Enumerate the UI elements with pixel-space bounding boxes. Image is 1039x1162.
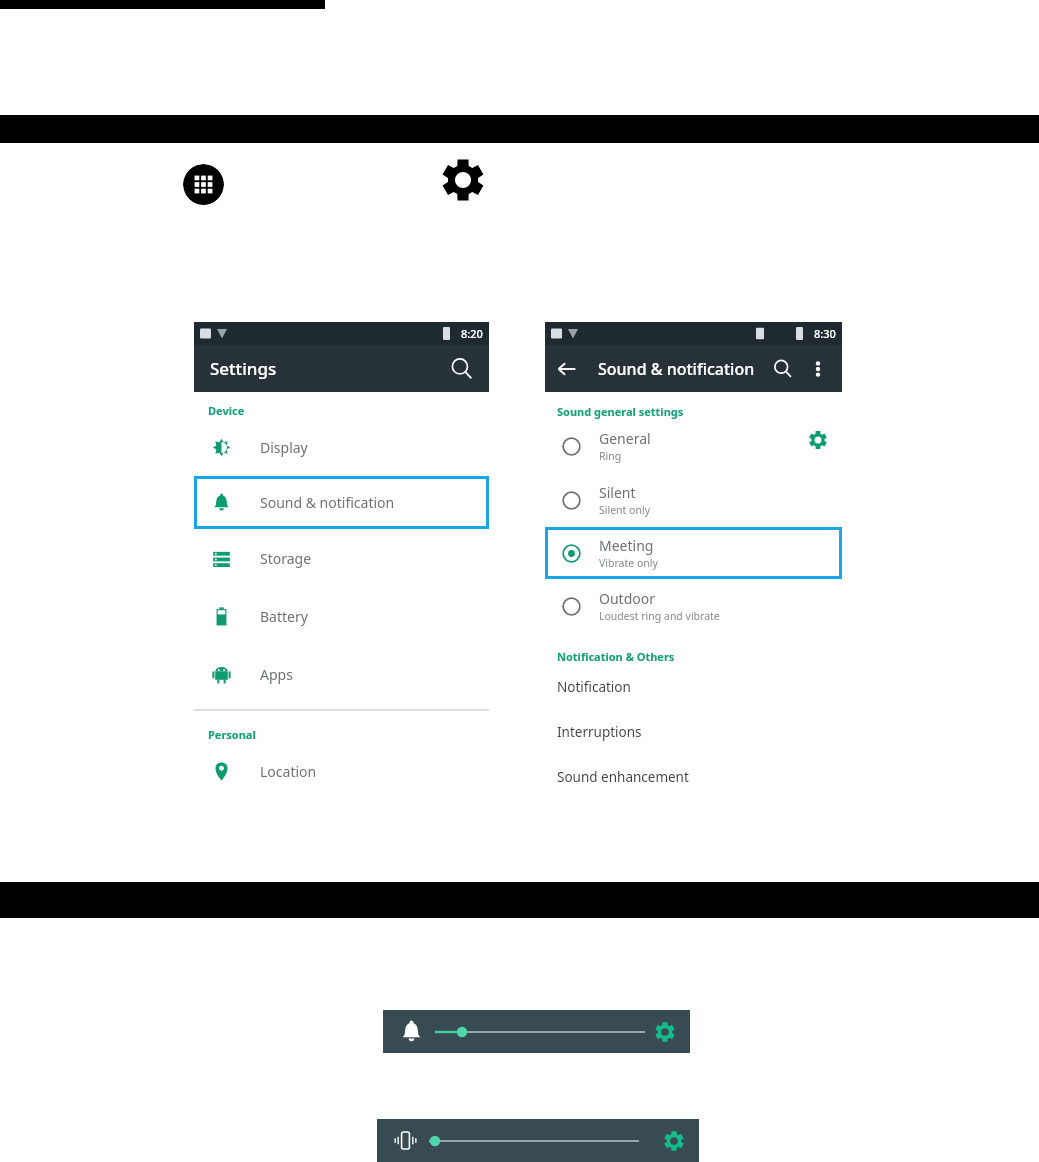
staticText: 8:20 xyxy=(461,326,483,341)
button[interactable]: Search xyxy=(449,356,475,382)
staticText: General xyxy=(599,429,651,448)
staticText: Sound general settings xyxy=(557,404,684,419)
button[interactable]: Storage xyxy=(194,529,489,587)
staticText: Display xyxy=(260,438,308,457)
staticText: Device xyxy=(208,403,245,418)
button[interactable]: Apps xyxy=(194,645,489,703)
button[interactable]: More options xyxy=(808,359,828,379)
staticText: Settings xyxy=(210,357,277,380)
button[interactable]: Sound settings xyxy=(663,1130,685,1152)
button[interactable]: Settings xyxy=(440,157,486,203)
staticText: Meeting xyxy=(599,536,654,555)
button[interactable]: Interruptions xyxy=(545,709,842,754)
staticText: Vibrate only xyxy=(599,556,658,570)
staticText: Battery xyxy=(260,607,308,626)
button[interactable]: Meeting xyxy=(545,527,842,579)
button[interactable]: Vibrate xyxy=(394,1129,417,1152)
button[interactable]: Sound settings xyxy=(654,1021,676,1043)
button[interactable]: Ring volume xyxy=(400,1020,423,1043)
staticText: Ring xyxy=(599,449,622,463)
button[interactable]: Search xyxy=(772,358,794,380)
staticText: Sound & notification xyxy=(598,358,755,380)
staticText: Notification xyxy=(557,678,631,696)
button[interactable]: Sound & notification xyxy=(194,476,489,529)
staticText: Apps xyxy=(260,665,293,684)
staticText: Sound & notification xyxy=(260,493,395,512)
button[interactable]: Apps xyxy=(183,164,224,205)
button[interactable]: Notification xyxy=(545,664,842,709)
staticText: Interruptions xyxy=(557,723,642,741)
staticText: Outdoor xyxy=(599,589,655,608)
staticText: 8:30 xyxy=(814,326,836,341)
button[interactable]: Sound enhancement xyxy=(545,754,842,799)
button[interactable]: Battery xyxy=(194,587,489,645)
button[interactable]: Back xyxy=(555,357,579,381)
staticText: Silent xyxy=(599,483,636,502)
staticText: Personal xyxy=(208,727,256,742)
staticText: Location xyxy=(260,762,317,781)
button[interactable]: Silent xyxy=(545,473,842,527)
staticText: Loudest ring and vibrate xyxy=(599,609,720,623)
button[interactable]: Outdoor xyxy=(545,579,842,633)
button[interactable]: Location xyxy=(194,742,489,800)
button[interactable] xyxy=(429,1131,639,1151)
button[interactable]: Display xyxy=(194,418,489,476)
button[interactable] xyxy=(435,1022,645,1042)
button[interactable]: General xyxy=(545,419,842,473)
staticText: Notification & Others xyxy=(557,649,675,664)
staticText: Sound enhancement xyxy=(557,768,689,786)
staticText: Storage xyxy=(260,549,312,568)
button[interactable]: General settings xyxy=(808,430,828,450)
staticText: Silent only xyxy=(599,503,651,517)
